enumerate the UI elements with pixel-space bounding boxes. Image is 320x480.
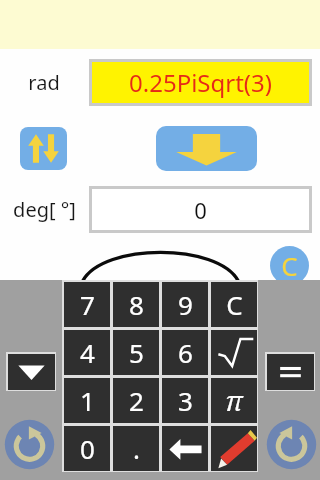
staticText: 2 bbox=[129, 383, 144, 418]
staticText: 0 bbox=[80, 431, 95, 466]
button[interactable]: . bbox=[111, 424, 160, 472]
button[interactable]: 1 bbox=[62, 376, 111, 424]
staticText: . bbox=[133, 431, 140, 466]
button[interactable]: Square root bbox=[209, 328, 258, 376]
staticText: 0.25PiSqrt(3) bbox=[129, 66, 272, 99]
button[interactable]: Undo bbox=[266, 419, 317, 470]
staticText: C bbox=[226, 287, 243, 322]
button[interactable]: C bbox=[270, 246, 309, 285]
staticText: π bbox=[225, 382, 243, 419]
button[interactable]: 2 bbox=[111, 376, 160, 424]
button[interactable]: More bbox=[6, 352, 56, 391]
staticText: 0 bbox=[194, 195, 207, 225]
staticText: 7 bbox=[80, 287, 95, 322]
button[interactable]: Swap rad and deg bbox=[20, 127, 67, 170]
button[interactable]: Convert bbox=[156, 126, 257, 171]
staticText: C bbox=[281, 248, 298, 283]
button[interactable]: 8 bbox=[111, 280, 160, 328]
button[interactable]: Equals bbox=[265, 352, 315, 391]
staticText: deg[ °] bbox=[13, 196, 76, 223]
staticText: 1 bbox=[80, 383, 95, 418]
button[interactable]: 3 bbox=[160, 376, 209, 424]
staticText: 3 bbox=[178, 383, 193, 418]
button[interactable]: 7 bbox=[62, 280, 111, 328]
staticText: rad bbox=[28, 69, 60, 96]
button[interactable]: 5 bbox=[111, 328, 160, 376]
staticText: 8 bbox=[129, 287, 144, 322]
button[interactable]: 4 bbox=[62, 328, 111, 376]
staticText: 4 bbox=[80, 335, 95, 370]
staticText: 5 bbox=[129, 335, 144, 370]
button[interactable]: C bbox=[209, 280, 258, 328]
button[interactable]: 9 bbox=[160, 280, 209, 328]
staticText: 9 bbox=[178, 287, 193, 322]
staticText: 6 bbox=[178, 335, 193, 370]
button[interactable]: 0 bbox=[89, 186, 312, 233]
button[interactable]: Backspace bbox=[160, 424, 209, 472]
button[interactable]: 6 bbox=[160, 328, 209, 376]
button[interactable]: 0.25PiSqrt(3) bbox=[89, 59, 312, 106]
button[interactable]: Pi bbox=[209, 376, 258, 424]
button[interactable]: Edit bbox=[209, 424, 258, 472]
button[interactable]: 0 bbox=[62, 424, 111, 472]
button[interactable]: Redo bbox=[4, 419, 55, 470]
